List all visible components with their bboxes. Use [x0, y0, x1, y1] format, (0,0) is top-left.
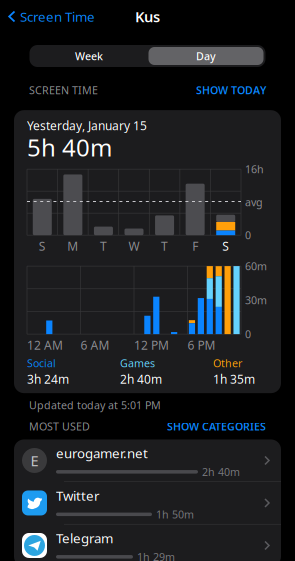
- staticText: 1h 35m: [213, 371, 255, 387]
- staticText: 60m: [245, 259, 267, 273]
- button[interactable]: Week: [31, 47, 146, 65]
- staticText: E: [30, 451, 38, 470]
- button[interactable]: E: [14, 439, 281, 481]
- staticText: 30m: [245, 293, 267, 307]
- staticText: 16h: [245, 162, 264, 176]
- staticText: S: [222, 238, 229, 254]
- staticText: F: [192, 238, 198, 254]
- staticText: 3h 24m: [27, 371, 69, 387]
- staticText: SHOW CATEGORIES: [167, 419, 266, 433]
- staticText: Yesterday, January 15: [27, 118, 147, 134]
- staticText: MOST USED: [29, 419, 90, 433]
- staticText: 0: [245, 327, 251, 341]
- staticText: avg: [245, 195, 263, 209]
- staticText: M: [67, 238, 78, 254]
- button[interactable]: Telegram: [14, 524, 281, 561]
- staticText: T: [161, 238, 168, 254]
- staticText: 6 PM: [187, 337, 215, 353]
- staticText: 1h 50m: [156, 507, 194, 521]
- button[interactable]: Twitter: [14, 482, 281, 524]
- staticText: W: [128, 238, 139, 254]
- staticText: 2h 40m: [120, 371, 162, 387]
- button[interactable]: Screen Time: [0, 2, 103, 31]
- button[interactable]: SHOW CATEGORIES: [167, 419, 266, 433]
- staticText: 0: [245, 228, 251, 242]
- staticText: Day: [196, 49, 216, 63]
- staticText: Kus: [135, 7, 160, 26]
- staticText: 5h 40m: [27, 131, 112, 163]
- staticText: SHOW TODAY: [196, 83, 266, 97]
- staticText: eurogamer.net: [56, 444, 148, 462]
- staticText: Games: [120, 356, 155, 370]
- staticText: 12 AM: [27, 337, 63, 353]
- button[interactable]: SHOW TODAY: [196, 83, 266, 97]
- staticText: Twitter: [56, 487, 100, 504]
- staticText: Social: [27, 356, 56, 370]
- staticText: S: [39, 238, 46, 254]
- staticText: 2h 40m: [202, 465, 240, 479]
- staticText: Other: [213, 356, 242, 370]
- staticText: Week: [75, 49, 103, 63]
- staticText: Telegram: [56, 529, 113, 547]
- staticText: 1h 29m: [137, 550, 175, 561]
- staticText: Updated today at 5:01 PM: [29, 398, 161, 412]
- staticText: 12 PM: [134, 337, 169, 353]
- staticText: 6 AM: [80, 337, 109, 353]
- staticText: Screen Time: [20, 8, 95, 25]
- staticText: T: [100, 238, 107, 254]
- staticText: SCREEN TIME: [29, 83, 98, 97]
- button[interactable]: Day: [148, 47, 263, 65]
